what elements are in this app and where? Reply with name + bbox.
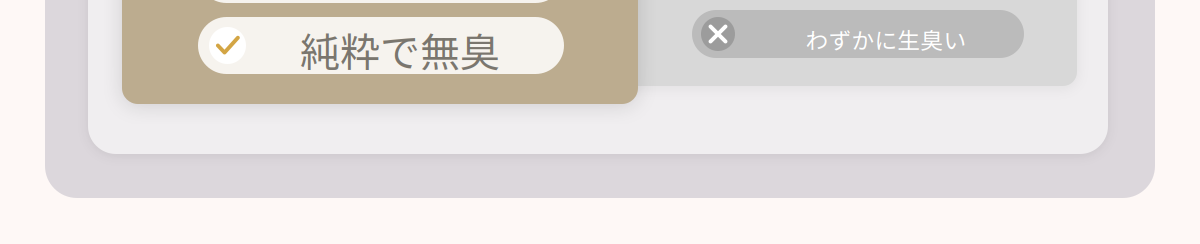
button[interactable]: わずかに生臭い — [692, 10, 1024, 58]
staticText: 純粋で無臭 — [300, 20, 500, 78]
button[interactable]: 純粋で無臭 — [198, 17, 564, 74]
staticText: わずかに生臭い — [805, 23, 966, 55]
